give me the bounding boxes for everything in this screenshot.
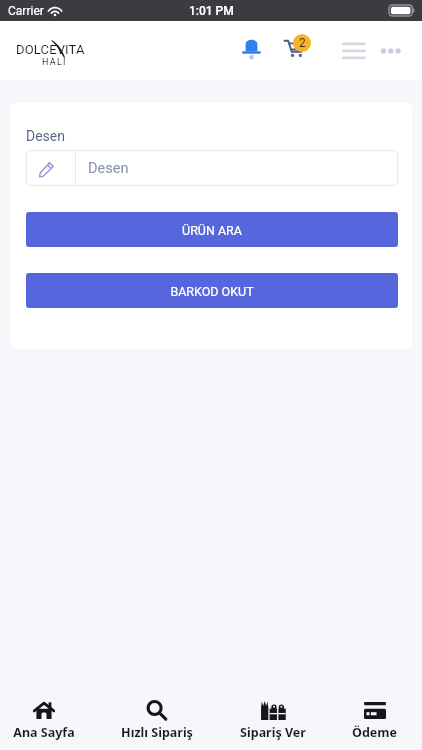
- button[interactable]: Hızlı Sipariş: [121, 700, 193, 741]
- button[interactable]: Desen: [26, 150, 398, 186]
- staticText: Carrier: [8, 4, 44, 18]
- staticText: Desen: [88, 160, 129, 177]
- staticText: Ödeme: [352, 724, 397, 741]
- button[interactable]: ÜRÜN ARA: [26, 212, 398, 247]
- staticText: Hızlı Sipariş: [121, 724, 193, 741]
- button[interactable]: Notifications: [232, 30, 270, 68]
- staticText: 1:01 PM: [189, 4, 234, 18]
- staticText: BARKOD OKUT: [170, 284, 254, 299]
- staticText: HALI: [42, 57, 67, 68]
- staticText: Sipariş Ver: [240, 724, 306, 741]
- button[interactable]: Sipariş Ver: [240, 700, 306, 741]
- button[interactable]: Ana Sayfa: [13, 700, 75, 741]
- button[interactable]: Menu: [337, 33, 370, 66]
- staticText: DOLCEVITA: [16, 42, 85, 57]
- staticText: 2: [299, 36, 306, 50]
- button[interactable]: More options: [375, 36, 405, 66]
- button[interactable]: BARKOD OKUT: [26, 273, 398, 308]
- staticText: Ana Sayfa: [13, 724, 75, 741]
- staticText: ÜRÜN ARA: [182, 223, 242, 238]
- staticText: Desen: [26, 128, 65, 144]
- button[interactable]: Ödeme: [352, 700, 397, 741]
- button[interactable]: Cart: [279, 30, 315, 61]
